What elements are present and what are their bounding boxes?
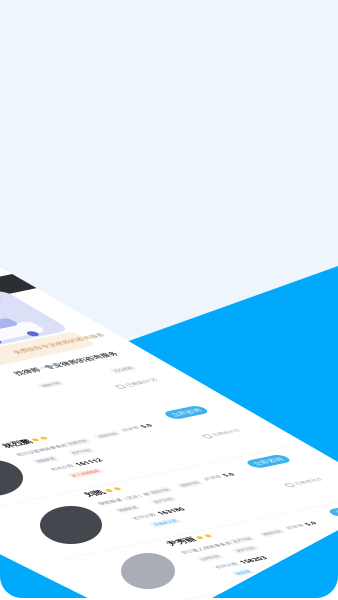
staticText: 交通事故理赔 · 一站直通车: [274, 451, 338, 485]
